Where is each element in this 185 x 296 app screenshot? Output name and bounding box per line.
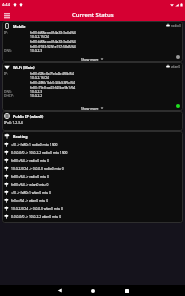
staticText: ::/0 -> fe80::1 wlan0 mtu 0 — [11, 190, 51, 194]
button[interactable]: Public IP (wlan0) — [2, 111, 183, 131]
staticText: DNS: — [4, 89, 30, 93]
staticText: Routing — [13, 134, 28, 139]
staticText: fe80::/64 -> radio0 mtu 0 — [11, 174, 50, 178]
staticText: IPv4: 1.2.3.4 — [4, 120, 23, 124]
button[interactable]: Open navigation menu — [0, 9, 14, 21]
staticText: fe80::/64 -> radio0 mtu 0 — [11, 158, 50, 162]
staticText: IP: — [4, 71, 30, 75]
staticText: Show more — [81, 106, 99, 110]
staticText: fe0c::/64 -> wlan0 mtu 0 — [11, 198, 49, 202]
staticText: 10.0.2.3 — [30, 48, 43, 52]
staticText: IP: — [4, 30, 30, 34]
staticText: Wi-Fi (Main) — [13, 65, 35, 70]
staticText: 10.0.2.2 — [30, 93, 43, 97]
staticText: fe80::f28c:8a7f:cb4b:4f8b/64 10.0.2.16/2… — [30, 71, 76, 89]
button[interactable]: Recent apps — [110, 285, 144, 296]
staticText: Mobile — [13, 24, 26, 29]
staticText: radio0 — [171, 23, 181, 27]
staticText: Public IP (wlan0) — [13, 114, 44, 119]
staticText: wlan0 — [171, 64, 181, 68]
staticText: fe80::/64 -> wlan0 mtu 0 — [11, 182, 49, 186]
button[interactable]: Back — [42, 285, 76, 296]
button[interactable]: Home — [76, 285, 110, 296]
staticText: DNS: — [4, 48, 30, 52]
button[interactable]: Mobile — [2, 21, 183, 62]
staticText: 10.0.2.0/24 -> 0.0.0.0 wlan0 mtu 0 — [11, 206, 63, 210]
staticText: 4:44 — [2, 2, 10, 7]
staticText: Show more — [81, 57, 99, 61]
button[interactable]: Routing — [2, 131, 183, 223]
button[interactable]: Show more — [77, 105, 108, 111]
staticText: Current Status — [72, 11, 114, 19]
staticText: 0.0.0.0/0 -> 10.0.2.2 wlan0 mtu 0 — [11, 214, 62, 218]
staticText: fe80::b88a:ae4f:4a33:3e4d/64 10.0.2.15/2… — [30, 30, 76, 48]
staticText: ::/0 -> fe80::1 radio0 mtu 1500 — [11, 142, 58, 146]
staticText: 10.0.2.3 — [30, 89, 43, 93]
staticText: DHCP: — [4, 93, 30, 97]
button[interactable]: Show more — [77, 56, 108, 62]
staticText: 10.0.2.0/24 -> 0.0.0.0 radio0 mtu 0 — [11, 166, 64, 170]
button[interactable]: Wi-Fi (Main) — [2, 62, 183, 111]
staticText: 0.0.0.0/0 -> 10.0.2.2 radio0 mtu 1500 — [11, 150, 68, 154]
